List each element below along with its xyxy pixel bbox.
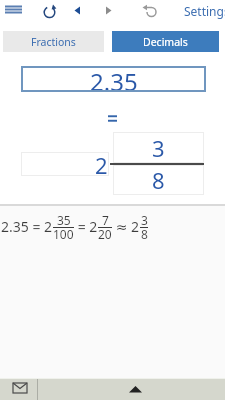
staticText: 2.35 — [90, 65, 138, 91]
staticText: 35 — [57, 212, 71, 228]
button[interactable] — [140, 3, 158, 19]
staticText: 2.35 = 2 — [1, 217, 53, 236]
staticText: Fractions — [31, 35, 76, 49]
button[interactable]: 2.35 — [21, 66, 206, 92]
button[interactable] — [8, 379, 32, 399]
button[interactable] — [42, 3, 58, 19]
staticText: 20 — [98, 226, 112, 242]
button[interactable]: 3 — [113, 132, 204, 163]
button[interactable]: 2 — [21, 152, 109, 176]
button[interactable]: Decimals — [112, 31, 219, 52]
staticText: 8 — [141, 226, 148, 242]
staticText: 100 — [53, 226, 74, 242]
button[interactable] — [70, 2, 86, 18]
button[interactable] — [2, 2, 26, 18]
staticText: 8 — [152, 165, 165, 195]
staticText: 3 — [141, 212, 148, 228]
staticText: ≈ 2 — [112, 217, 140, 236]
staticText: 7 — [102, 212, 109, 228]
button[interactable]: Fractions — [3, 31, 104, 52]
staticText: 3 — [152, 133, 165, 163]
staticText: Decimals — [143, 35, 188, 49]
button[interactable] — [102, 2, 118, 18]
staticText: 2 — [95, 150, 108, 174]
staticText: = 2 — [74, 217, 98, 236]
button[interactable] — [38, 378, 225, 400]
button[interactable]: Settings — [184, 3, 225, 19]
button[interactable]: 8 — [113, 165, 204, 195]
